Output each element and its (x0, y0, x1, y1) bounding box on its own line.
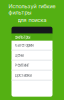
staticText: Используй гибкие фильтры (8, 3, 55, 16)
staticText: Цена (14, 53, 23, 58)
staticText: для поиска (17, 17, 46, 23)
staticText: Доставка (14, 73, 31, 78)
staticText: Категория (14, 43, 33, 48)
staticText: Рейтинг (14, 63, 29, 68)
staticText: Фильтры (14, 35, 30, 40)
